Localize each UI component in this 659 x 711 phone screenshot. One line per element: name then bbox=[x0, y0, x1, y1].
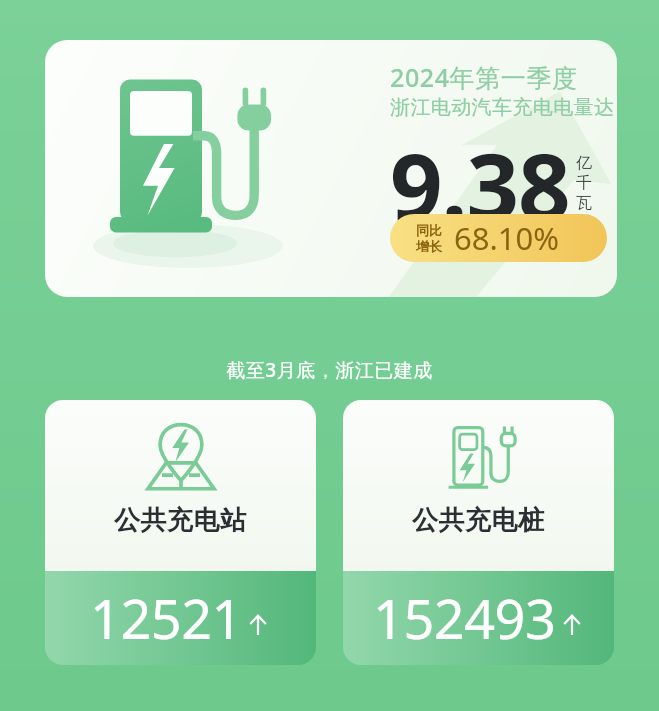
staticText: 时 bbox=[576, 213, 592, 233]
staticText: 亿 bbox=[576, 153, 592, 173]
staticText: 增长 bbox=[416, 238, 442, 254]
staticText: 公共充电桩 bbox=[412, 504, 545, 537]
staticText: 截至3月底，浙江已建成 bbox=[226, 357, 433, 383]
other: Public charging stations bbox=[143, 420, 219, 496]
staticText: 9.38 bbox=[390, 122, 570, 247]
staticText: 浙江电动汽车充电电量达 bbox=[390, 95, 615, 120]
button[interactable]: 2024年第一季度 bbox=[45, 40, 617, 297]
staticText: 68.10% bbox=[454, 217, 559, 259]
button[interactable]: Public charging stations bbox=[45, 400, 316, 665]
button[interactable]: 同比 bbox=[390, 214, 607, 262]
staticText: 公共充电站 bbox=[114, 504, 247, 537]
staticText: 瓦 bbox=[576, 193, 592, 213]
staticText: 12521 bbox=[90, 581, 242, 655]
staticText: 同比 bbox=[416, 222, 442, 238]
button[interactable]: Public charging piles bbox=[343, 400, 614, 665]
staticText: 152493 bbox=[373, 581, 556, 655]
staticText: 2024年第一季度 bbox=[390, 60, 578, 94]
other: Public charging piles bbox=[441, 420, 517, 496]
staticText: 千 bbox=[576, 173, 592, 193]
